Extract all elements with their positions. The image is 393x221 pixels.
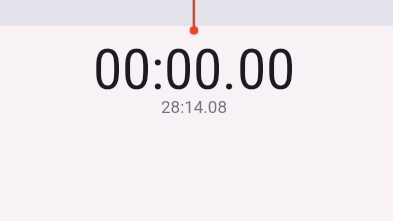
button[interactable]: 00:00.00 <box>0 0 393 121</box>
staticText: 00:00.00 <box>93 37 295 103</box>
staticText: 28:14.08 <box>161 97 227 117</box>
